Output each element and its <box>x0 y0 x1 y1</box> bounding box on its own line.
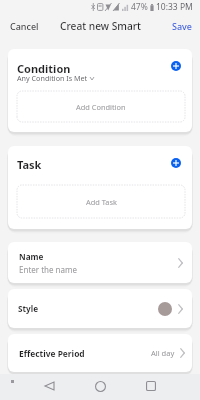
staticText: Enter the name <box>19 264 78 275</box>
button[interactable]: Recent apps <box>139 373 163 399</box>
staticText: 10:33 PM <box>156 1 193 13</box>
button[interactable]: Save <box>162 13 200 39</box>
button[interactable]: Add Condition <box>17 91 185 122</box>
staticText: Effective Period <box>19 348 151 359</box>
button[interactable]: Back <box>37 373 61 399</box>
button[interactable]: Add task <box>171 158 181 168</box>
staticText: Add Condition <box>76 102 126 112</box>
button[interactable]: Home <box>88 373 112 399</box>
staticText: Add Task <box>86 197 117 207</box>
staticText: Save <box>172 20 193 32</box>
staticText: Name <box>19 251 44 262</box>
button[interactable]: Effective Period <box>8 334 192 372</box>
staticText: Task <box>17 157 42 172</box>
staticText: Cancel <box>10 20 39 32</box>
button[interactable]: Add Task <box>17 185 185 218</box>
staticText: Creat new Smart <box>60 19 141 33</box>
button[interactable]: Add condition <box>171 61 181 71</box>
button[interactable]: Cancel <box>0 13 49 39</box>
staticText: Condition <box>17 61 71 76</box>
staticText: Style <box>18 303 158 314</box>
staticText: 47% <box>131 1 148 13</box>
button[interactable]: Input method <box>4 373 20 389</box>
staticText: All day <box>151 348 175 358</box>
button[interactable]: Name <box>8 242 192 283</box>
staticText: Any Condition Is Met <box>17 73 88 83</box>
button[interactable]: Style <box>8 289 192 328</box>
